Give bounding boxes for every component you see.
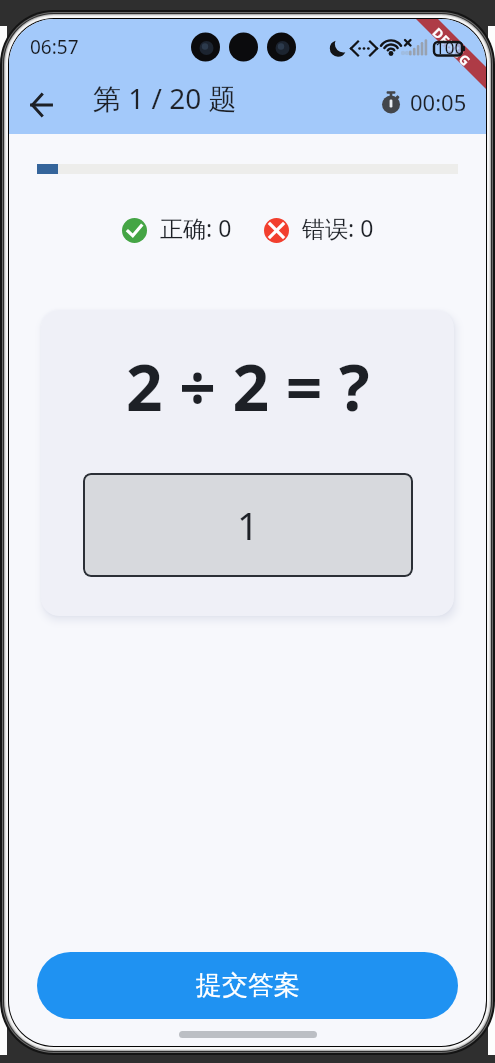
staticText: 2 ÷ 2 = ? — [126, 343, 370, 430]
staticText: 1 — [237, 499, 259, 551]
button[interactable]: 提交答案 — [37, 952, 458, 1019]
button[interactable]: 1 — [83, 473, 413, 577]
staticText: 100 — [435, 36, 465, 59]
staticText: 第 1 / 20 题 — [93, 79, 237, 117]
staticText: 提交答案 — [196, 969, 300, 1002]
staticText: 错误: 0 — [302, 212, 374, 243]
staticText: 正确: 0 — [160, 212, 232, 243]
staticText: DEBUG — [429, 24, 475, 70]
button[interactable]: Back — [18, 81, 66, 129]
staticText: 06:57 — [30, 34, 79, 60]
staticText: 00:05 — [410, 87, 467, 117]
